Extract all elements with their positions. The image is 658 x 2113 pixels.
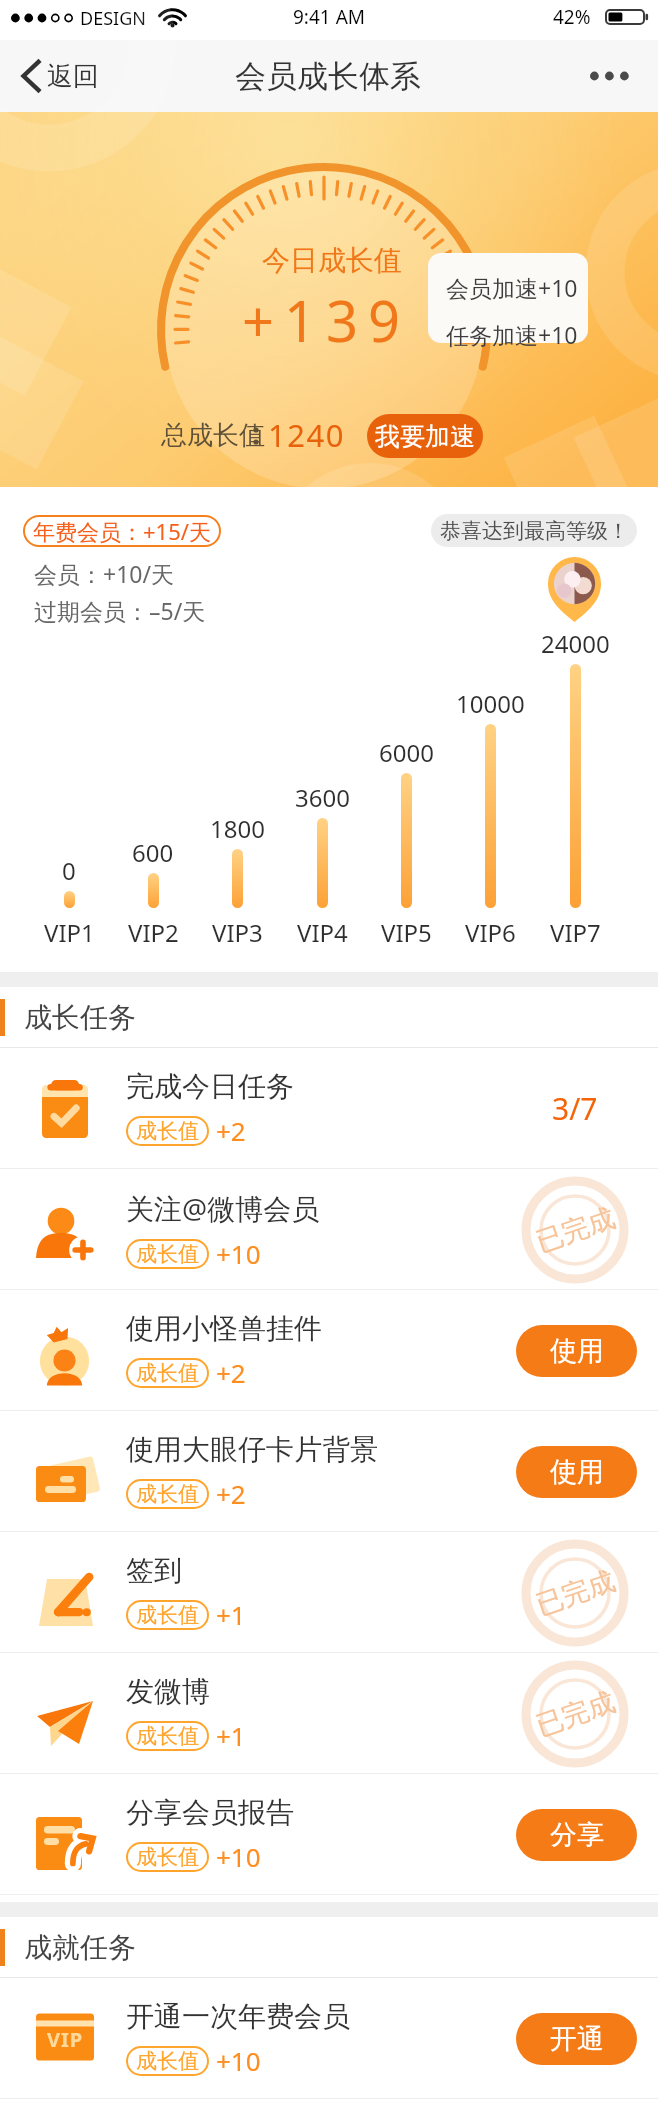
staticText: VIP5 [381,916,432,948]
staticText: 成长值 [136,1481,199,1507]
staticText: 完成今日任务 [126,1069,294,1104]
staticText: 成长值 [136,1723,199,1749]
staticText: 开通一次年费会员 [126,1999,350,2034]
staticText: +10 [216,2043,261,2078]
staticText: 已完成 [532,1685,619,1743]
staticText: 我要加速 [375,421,475,452]
staticText: 成长值 [136,1844,199,1870]
staticText: 使用 [550,1455,604,1489]
staticText: 10000 [456,687,525,719]
staticText: 关注@微博会员 [126,1189,320,1227]
staticText: 1800 [210,812,265,844]
staticText: +2 [216,1355,246,1390]
staticText: VIP7 [550,916,601,948]
staticText: 1240 [268,414,345,454]
staticText: +10 [216,1839,261,1874]
staticText: +139 [242,282,411,356]
staticText: 成就任务 [24,1930,136,1965]
staticText: 成长值 [136,1602,199,1628]
staticText: VIP4 [297,916,348,948]
staticText: VIP [47,2026,84,2053]
staticText: 成长任务 [24,1000,136,1035]
staticText: 会员：+10/天 [34,558,175,589]
staticText: VIP6 [465,916,516,948]
button[interactable]: 分享 [516,1809,637,1861]
button[interactable]: 完成今日任务 [0,1048,658,1169]
staticText: 已完成 [532,1564,619,1622]
staticText: VIP2 [128,916,179,948]
staticText: +2 [216,1476,246,1511]
staticText: 总成长值 [161,419,265,452]
button[interactable]: 使用 [516,1446,637,1498]
staticText: 成长值 [136,1118,199,1144]
button[interactable]: VIP [0,1978,658,2099]
staticText: 已完成 [532,1201,619,1259]
staticText: 过期会员：–5/天 [34,595,206,626]
staticText: +10 [216,1236,261,1271]
staticText: 3600 [295,781,350,813]
staticText: 使用小怪兽挂件 [126,1311,322,1346]
staticText: VIP3 [212,916,263,948]
button[interactable]: 返回 [0,40,120,112]
staticText: 恭喜达到最高等级！ [440,518,629,544]
button[interactable]: More options [572,40,658,112]
staticText: 分享会员报告 [126,1795,294,1830]
staticText: 成长值 [136,1360,199,1386]
staticText: 24000 [541,627,610,659]
staticText: 会员加速+10 [446,272,578,303]
staticText: 42% [553,4,591,30]
staticText: 3/7 [552,1088,598,1129]
button[interactable]: 使用大眼仔卡片背景 [0,1411,658,1532]
staticText: 成长值 [136,2048,199,2074]
staticText: 9:41 AM [293,4,366,30]
staticText: 年费会员：+15/天 [33,516,211,546]
button[interactable]: 关注@微博会员 [0,1169,658,1290]
button[interactable]: 使用 [516,1325,637,1377]
button[interactable]: 我要加速 [367,414,483,458]
staticText: 成长值 [136,1241,199,1267]
staticText: 发微博 [126,1674,210,1709]
staticText: 6000 [379,736,434,768]
staticText: 任务加速+10 [446,319,578,350]
staticText: 分享 [550,1818,604,1852]
staticText: 今日成长值 [262,243,402,278]
staticText: 0 [62,854,76,886]
staticText: +1 [216,1597,246,1632]
staticText: VIP1 [44,916,95,948]
button[interactable]: 开通 [516,2013,637,2065]
staticText: +2 [216,1113,246,1148]
staticText: 开通 [550,2022,604,2056]
staticText: 使用大眼仔卡片背景 [126,1432,378,1467]
staticText: 使用 [550,1334,604,1368]
staticText: 返回 [47,60,99,93]
staticText: 600 [132,836,174,868]
staticText: +1 [216,1718,246,1753]
button[interactable]: 使用小怪兽挂件 [0,1290,658,1411]
staticText: DESIGN [80,6,146,31]
staticText: 会员成长体系 [235,57,421,96]
button[interactable]: 发微博 [0,1653,658,1774]
button[interactable]: 签到 [0,1532,658,1653]
button[interactable]: 分享会员报告 [0,1774,658,1895]
staticText: 签到 [126,1553,182,1588]
